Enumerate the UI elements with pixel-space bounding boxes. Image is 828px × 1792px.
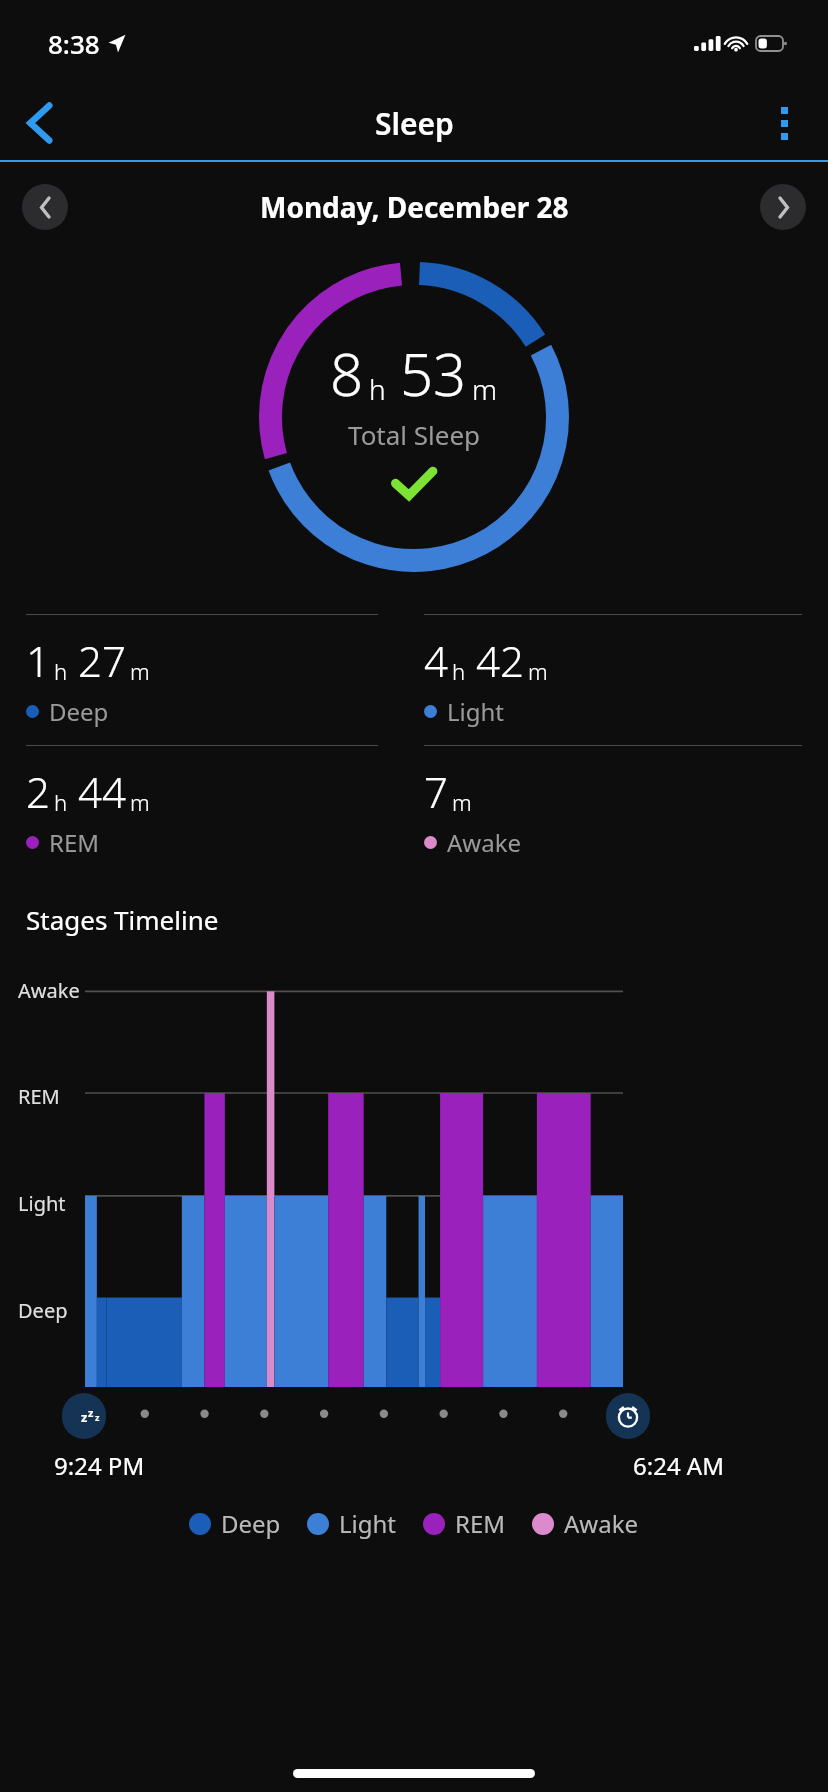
staticText: z: [95, 1411, 100, 1423]
staticText: Awake: [564, 1507, 639, 1540]
staticText: 8: [330, 334, 364, 413]
button[interactable]: More options: [756, 95, 812, 151]
staticText: m: [130, 787, 150, 817]
button[interactable]: Previous day: [22, 184, 68, 230]
button[interactable]: Wake time: [606, 1393, 650, 1439]
staticText: h: [54, 656, 68, 686]
staticText: Stages Timeline: [26, 902, 219, 937]
button[interactable]: 4: [424, 615, 828, 745]
button[interactable]: REM: [423, 1507, 506, 1540]
staticText: Total Sleep: [348, 417, 481, 452]
staticText: 1: [26, 632, 50, 689]
button[interactable]: 2: [26, 746, 414, 876]
staticText: Light: [447, 695, 505, 728]
button[interactable]: 7: [424, 746, 828, 876]
staticText: 2: [26, 763, 50, 820]
staticText: 27: [78, 632, 126, 689]
button[interactable]: Back: [12, 95, 68, 151]
staticText: 6:24 AM: [633, 1449, 724, 1482]
staticText: Monday, December 28: [260, 188, 569, 226]
staticText: 4: [424, 632, 448, 689]
staticText: Deep: [18, 1297, 68, 1324]
staticText: m: [452, 787, 472, 817]
staticText: REM: [18, 1083, 60, 1110]
button[interactable]: Next day: [760, 184, 806, 230]
button[interactable]: Awake: [532, 1507, 639, 1540]
staticText: Awake: [18, 977, 80, 1004]
button[interactable]: Light: [307, 1507, 397, 1540]
staticText: 53: [400, 334, 467, 413]
staticText: z: [88, 1405, 94, 1420]
staticText: 42: [476, 632, 524, 689]
staticText: 44: [78, 763, 126, 820]
staticText: REM: [49, 826, 100, 859]
staticText: m: [130, 656, 150, 686]
button[interactable]: Deep: [189, 1507, 281, 1540]
staticText: h: [54, 787, 68, 817]
staticText: REM: [455, 1507, 506, 1540]
staticText: 7: [424, 763, 448, 820]
staticText: Awake: [447, 826, 522, 859]
button[interactable]: Sleep start: [62, 1393, 106, 1439]
staticText: m: [528, 656, 548, 686]
staticText: Deep: [49, 695, 109, 728]
staticText: 9:24 PM: [54, 1449, 145, 1482]
staticText: Deep: [221, 1507, 281, 1540]
staticText: Light: [339, 1507, 397, 1540]
staticText: h: [452, 656, 466, 686]
staticText: Sleep: [375, 103, 454, 144]
staticText: Light: [18, 1190, 66, 1217]
button[interactable]: 1: [26, 615, 414, 745]
staticText: 8:38: [48, 26, 100, 61]
staticText: z: [81, 1408, 88, 1426]
staticText: m: [472, 370, 498, 408]
staticText: h: [369, 370, 386, 408]
